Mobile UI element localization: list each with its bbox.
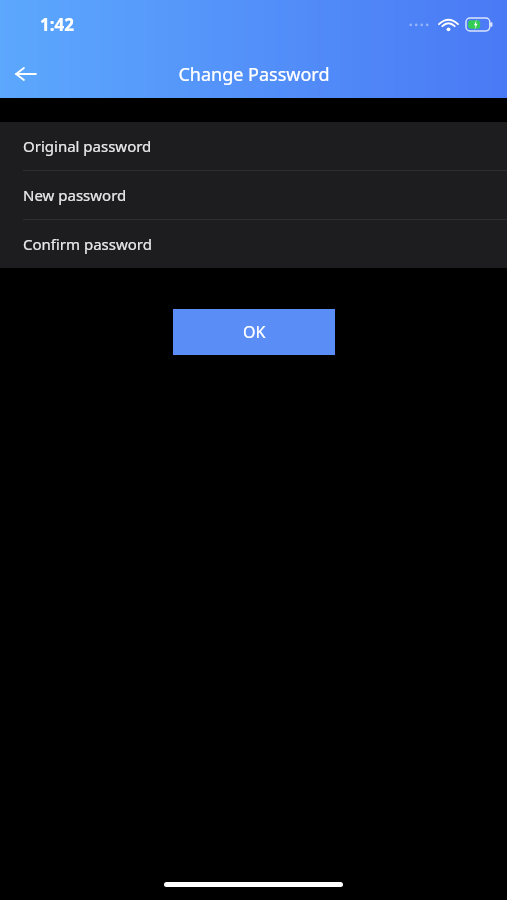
button[interactable]: Original password bbox=[0, 122, 507, 170]
staticText: Original password bbox=[23, 136, 152, 156]
staticText: OK bbox=[243, 321, 266, 343]
button[interactable]: New password bbox=[0, 171, 507, 219]
button[interactable]: Confirm password bbox=[0, 220, 507, 268]
staticText: 1:42 bbox=[40, 13, 74, 36]
staticText: Change Password bbox=[178, 62, 330, 87]
staticText: Confirm password bbox=[23, 234, 152, 254]
button[interactable]: Back bbox=[0, 50, 52, 98]
staticText: New password bbox=[23, 185, 127, 205]
button[interactable]: OK bbox=[173, 309, 335, 355]
